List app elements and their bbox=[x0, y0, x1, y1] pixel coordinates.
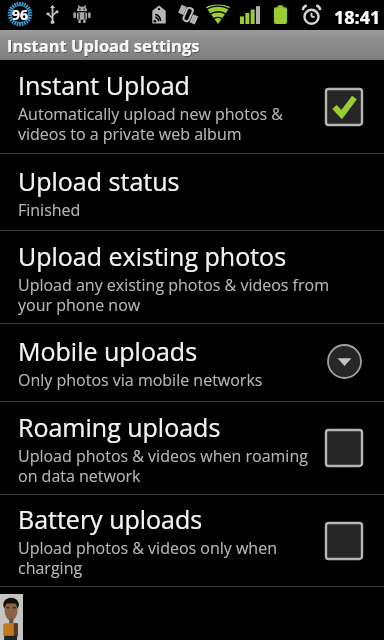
button[interactable]: Instant Upload bbox=[0, 60, 384, 153]
staticText: Automatically upload new photos & videos… bbox=[18, 104, 283, 144]
staticText: Instant Upload settings bbox=[8, 35, 201, 57]
staticText: 18:41 bbox=[334, 5, 381, 30]
button[interactable]: Toggle setting bbox=[326, 523, 362, 559]
staticText: Battery uploads bbox=[18, 505, 203, 535]
button[interactable]: Upload existing photos bbox=[0, 231, 384, 323]
button[interactable]: Toggle setting bbox=[326, 430, 362, 466]
staticText: Only photos via mobile networks bbox=[18, 370, 263, 390]
button[interactable]: Roaming uploads bbox=[0, 402, 384, 494]
staticText: Instant Upload bbox=[18, 71, 190, 101]
staticText: Mobile uploads bbox=[18, 337, 198, 367]
button[interactable]: Battery uploads bbox=[0, 495, 384, 586]
staticText: Upload photos & videos when roaming on d… bbox=[18, 446, 308, 486]
staticText: Finished bbox=[18, 200, 81, 220]
staticText: Roaming uploads bbox=[18, 413, 221, 443]
button[interactable]: Toggle setting bbox=[326, 89, 362, 125]
staticText: Upload status bbox=[18, 167, 180, 197]
staticText: Upload photos & videos only when chargin… bbox=[18, 538, 277, 578]
staticText: Instant Upload settings bbox=[7, 34, 200, 56]
staticText: Upload existing photos bbox=[18, 242, 287, 272]
button[interactable]: Open options bbox=[326, 343, 362, 379]
button[interactable]: Contact avatar bbox=[0, 594, 23, 640]
button[interactable]: Upload status bbox=[0, 154, 384, 230]
staticText: Upload any existing photos & videos from… bbox=[18, 275, 329, 315]
staticText: 96 bbox=[12, 5, 29, 24]
button[interactable]: Mobile uploads bbox=[0, 324, 384, 401]
